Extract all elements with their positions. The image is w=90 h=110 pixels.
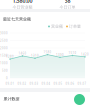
staticText: 1000	[0, 61, 8, 65]
staticText: 累计数据	[3, 96, 19, 101]
staticText: 1580	[43, 50, 51, 54]
staticText: 09-01	[5, 82, 14, 85]
staticText: 1,580.00	[12, 0, 32, 4]
staticText: 最近七天营业额	[3, 17, 31, 21]
staticText: 1500	[0, 54, 8, 57]
staticText: 0	[6, 76, 8, 80]
staticText: 09-06	[65, 82, 74, 85]
staticText: 09-05	[53, 82, 62, 85]
button[interactable]: 1,580.00	[0, 0, 45, 11]
staticText: 1420	[81, 53, 89, 56]
staticText: 1510	[68, 51, 76, 55]
staticText: 09-02	[17, 82, 26, 85]
staticText: 1280	[6, 55, 14, 58]
staticText: 3000	[0, 31, 8, 35]
staticText: 今日营业额	[12, 5, 32, 9]
staticText: 09-03	[29, 82, 38, 85]
staticText: 1390	[56, 53, 64, 57]
staticText: 09-07	[77, 82, 86, 85]
staticText: 38	[64, 0, 70, 4]
staticText: 09-04	[41, 82, 50, 85]
staticText: 500	[2, 69, 8, 72]
staticText: 2000	[0, 46, 8, 50]
staticText: 订单量	[69, 24, 81, 29]
staticText: 1310	[31, 54, 39, 57]
staticText: 2500	[0, 39, 8, 42]
staticText: 今日订单	[59, 5, 75, 9]
button[interactable]: Add	[74, 94, 85, 105]
staticText: 营业额	[51, 24, 63, 29]
button[interactable]: 38	[45, 0, 90, 11]
staticText: 1460	[18, 52, 26, 55]
